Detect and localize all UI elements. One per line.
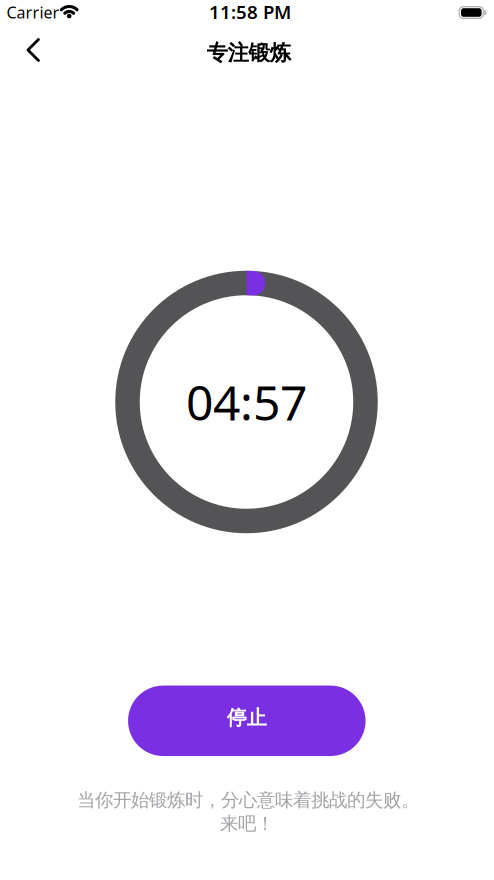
staticText: Carrier [6,2,59,23]
button[interactable]: 停止 [128,685,366,756]
staticText: 专注锻炼 [206,40,290,66]
staticText: 来吧！ [220,812,274,835]
staticText: 当你开始锻炼时，分心意味着挑战的失败。 [77,788,419,812]
staticText: 04:57 [186,370,307,434]
staticText: 11:58 PM [209,0,291,24]
button[interactable]: Back [18,29,48,70]
staticText: 停止 [227,705,267,730]
